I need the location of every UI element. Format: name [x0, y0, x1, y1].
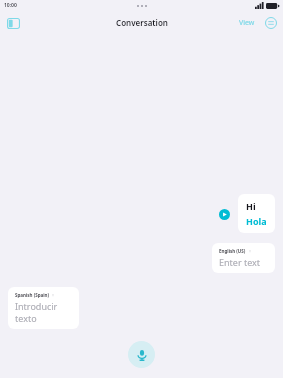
button[interactable]: Hi: [238, 194, 275, 233]
staticText: Introducir texto: [15, 300, 72, 324]
staticText: View: [239, 18, 255, 28]
button[interactable]: Record voice: [128, 341, 155, 368]
button[interactable]: Toggle sidebar: [4, 14, 22, 32]
staticText: Spanish (Spain): [15, 292, 49, 298]
button[interactable]: View: [237, 15, 257, 31]
staticText: Enter text: [219, 256, 261, 268]
staticText: Conversation: [116, 17, 168, 28]
button[interactable]: Swap languages: [263, 15, 279, 31]
staticText: English (US): [219, 248, 246, 254]
staticText: 10:00: [4, 2, 17, 9]
button[interactable]: Spanish (Spain): [8, 287, 79, 329]
button[interactable]: Play translation: [216, 206, 232, 222]
button[interactable]: English (US): [212, 243, 275, 273]
staticText: Hi: [246, 200, 256, 212]
staticText: Hola: [246, 215, 267, 227]
